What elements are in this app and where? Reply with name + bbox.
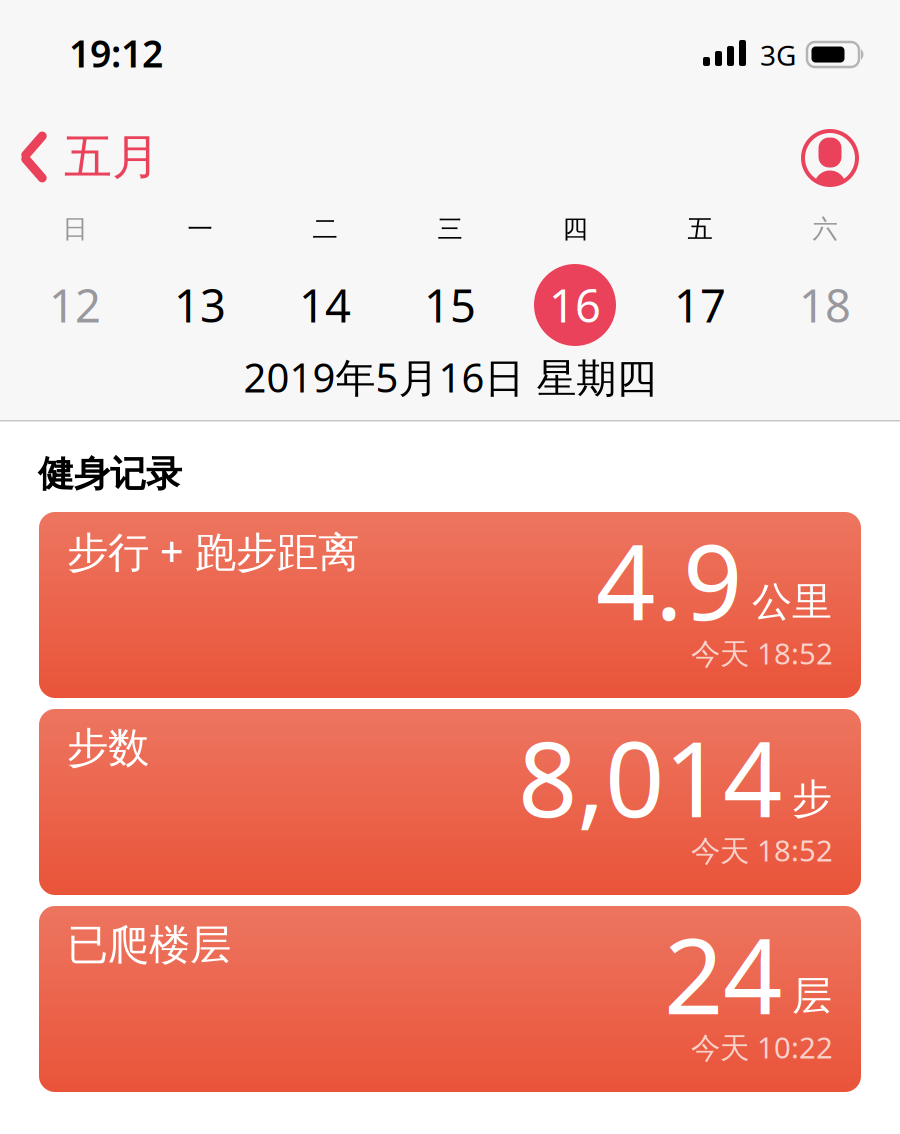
staticText: 日: [62, 213, 87, 244]
staticText: 今天 18:52: [691, 830, 833, 869]
staticText: 步: [792, 774, 832, 824]
staticText: 24: [664, 905, 782, 1043]
staticText: 一: [187, 213, 212, 244]
staticText: 4.9: [596, 511, 742, 649]
staticText: 三: [437, 213, 462, 244]
staticText: 今天 18:52: [691, 633, 833, 672]
staticText: 13: [174, 275, 226, 335]
staticText: 15: [424, 275, 476, 335]
staticText: 12: [49, 275, 101, 335]
staticText: 16: [549, 275, 601, 335]
staticText: 层: [792, 971, 832, 1021]
staticText: 健身记录: [38, 452, 182, 496]
staticText: 五月: [64, 127, 160, 186]
staticText: 18: [799, 275, 851, 335]
staticText: 步行 + 跑步距离: [67, 524, 359, 578]
staticText: 17: [674, 275, 726, 335]
staticText: 四: [562, 213, 587, 244]
staticText: 今天 10:22: [691, 1027, 833, 1066]
staticText: 2019年5月16日 星期四: [243, 350, 656, 403]
staticText: 五: [687, 213, 712, 244]
staticText: 8,014: [518, 708, 782, 846]
staticText: 六: [812, 213, 837, 244]
staticText: 14: [299, 275, 351, 335]
staticText: 19:12: [69, 28, 163, 78]
staticText: 3G: [760, 36, 796, 74]
staticText: 步数: [67, 723, 149, 773]
staticText: 已爬楼层: [67, 920, 231, 970]
staticText: 公里: [752, 577, 832, 627]
staticText: 二: [312, 213, 337, 244]
